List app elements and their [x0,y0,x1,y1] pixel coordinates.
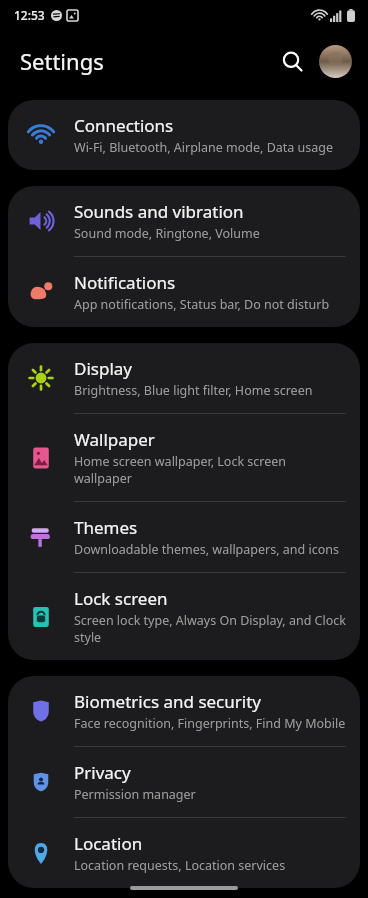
button[interactable]: Sounds and vibration [8,186,360,256]
button[interactable]: Wallpaper [8,414,360,501]
staticText: Home screen wallpaper, Lock screen wallp… [74,453,346,487]
staticText: Face recognition, Fingerprints, Find My … [74,715,346,732]
staticText: Permission manager [74,786,196,803]
staticText: App notifications, Status bar, Do not di… [74,296,330,313]
button[interactable]: Biometrics and security [8,676,360,746]
button[interactable]: Privacy [8,747,360,817]
staticText: Notifications [74,271,176,294]
staticText: Privacy [74,761,131,784]
staticText: Location [74,832,143,855]
button[interactable]: Notifications [8,257,360,327]
button[interactable]: Account [316,42,354,80]
staticText: Screen lock type, Always On Display, and… [74,612,346,646]
staticText: Brightness, Blue light filter, Home scre… [74,382,313,399]
staticText: Downloadable themes, wallpapers, and ico… [74,541,339,558]
staticText: Sounds and vibration [74,200,244,223]
button[interactable]: Location [8,818,360,888]
staticText: Settings [20,46,104,76]
button[interactable]: Lock screen [8,573,360,660]
staticText: Wi-Fi, Bluetooth, Airplane mode, Data us… [74,139,334,156]
button[interactable]: Themes [8,502,360,572]
staticText: Display [74,357,132,380]
button[interactable]: Search [272,41,312,81]
staticText: Themes [74,516,138,539]
staticText: Sound mode, Ringtone, Volume [74,225,260,242]
staticText: Biometrics and security [74,690,261,713]
staticText: Wallpaper [74,428,155,451]
staticText: 12:53 [14,7,45,23]
button[interactable]: Display [8,343,360,413]
staticText: Connections [74,114,174,137]
staticText: Location requests, Location services [74,857,286,874]
staticText: Lock screen [74,587,168,610]
button[interactable]: Connections [8,100,360,170]
